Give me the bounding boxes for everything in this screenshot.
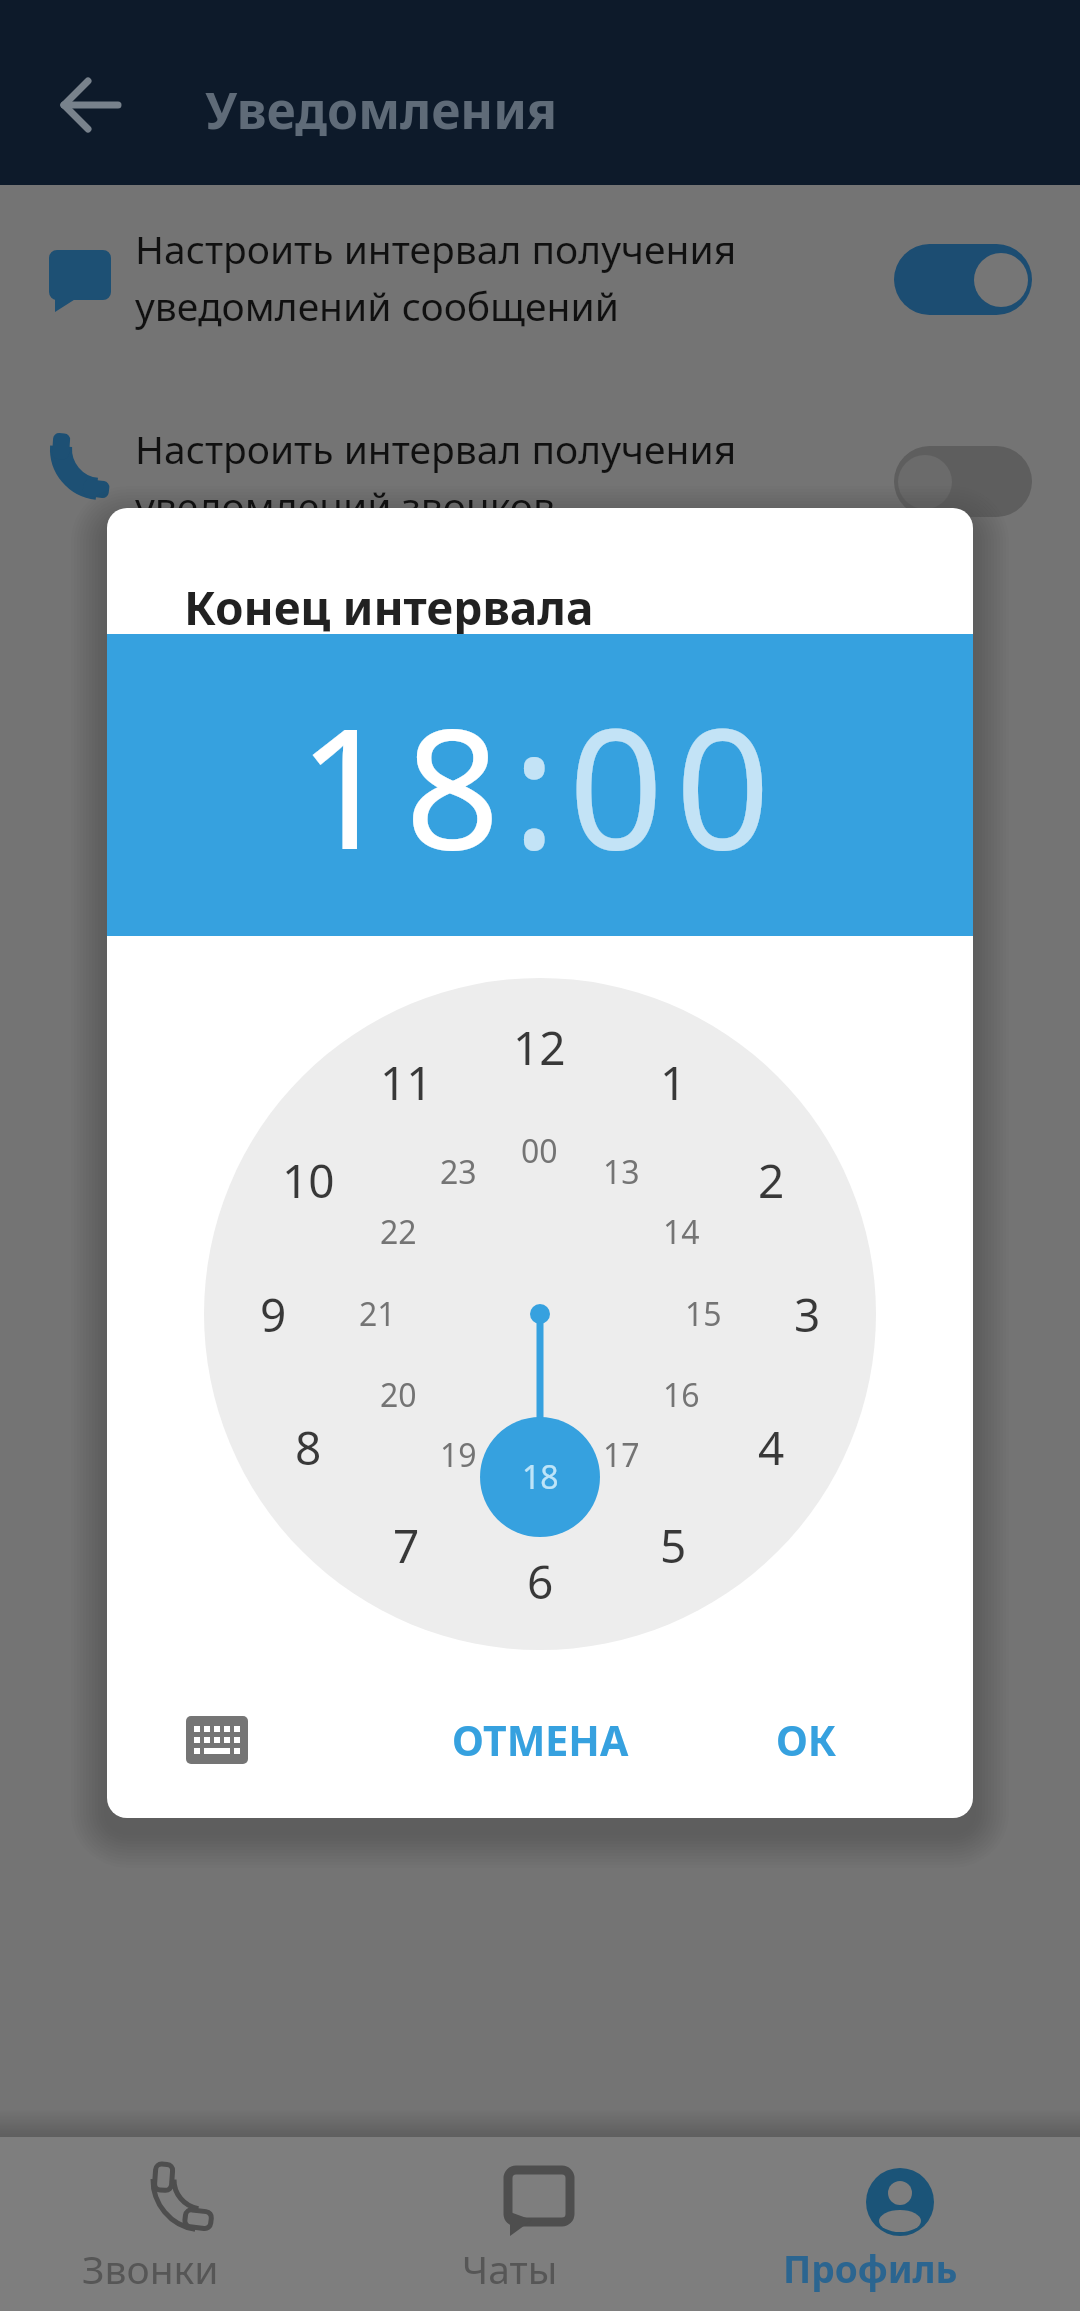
staticText: 21	[359, 1292, 396, 1336]
staticText: 22	[380, 1210, 417, 1254]
button[interactable]	[0, 400, 1080, 580]
staticText: 17	[603, 1433, 640, 1477]
staticText: 10	[282, 1149, 335, 1212]
staticText: 15	[685, 1292, 722, 1336]
staticText: Настроить интервал получения уведомлений…	[135, 422, 737, 532]
button[interactable]	[894, 244, 1032, 315]
staticText: 12	[513, 1016, 566, 1079]
button[interactable]	[186, 1716, 248, 1764]
staticText: Профиль	[783, 2243, 958, 2293]
staticText: 2	[758, 1149, 785, 1212]
button[interactable]: Чаты	[420, 2137, 660, 2311]
staticText: Уведомления	[205, 76, 558, 144]
staticText: 8	[295, 1416, 322, 1479]
staticText: 1	[660, 1051, 687, 1114]
staticText: 16	[663, 1373, 700, 1417]
staticText: 00	[521, 1129, 558, 1173]
button[interactable]: ОК	[726, 1690, 886, 1790]
staticText: 6	[527, 1550, 554, 1613]
staticText: 23	[440, 1150, 477, 1194]
staticText: 20	[380, 1373, 417, 1417]
staticText: Звонки	[82, 2242, 219, 2295]
staticText: 18	[522, 1455, 559, 1499]
staticText: 3	[794, 1283, 821, 1346]
staticText: 18:00	[298, 672, 783, 898]
staticText: 4	[758, 1416, 785, 1479]
staticText: 19	[440, 1433, 477, 1477]
staticText: ОТМЕНА	[452, 1712, 629, 1768]
button[interactable]	[60, 76, 122, 134]
staticText: Чаты	[462, 2242, 558, 2295]
button[interactable]: Профиль	[780, 2137, 1020, 2311]
staticText: 5	[660, 1514, 687, 1577]
staticText: 13	[603, 1150, 640, 1194]
staticText: Настроить интервал получения уведомлений…	[135, 222, 737, 332]
staticText: 11	[380, 1051, 433, 1114]
staticText: ОК	[776, 1712, 837, 1768]
button[interactable]: Звонки	[60, 2137, 300, 2311]
staticText: Конец интервала	[184, 576, 594, 639]
button[interactable]: ОТМЕНА	[410, 1690, 670, 1790]
staticText: 14	[663, 1210, 700, 1254]
staticText: 7	[393, 1514, 420, 1577]
button[interactable]	[894, 446, 1032, 517]
button[interactable]	[0, 200, 1080, 380]
staticText: 9	[260, 1283, 287, 1346]
